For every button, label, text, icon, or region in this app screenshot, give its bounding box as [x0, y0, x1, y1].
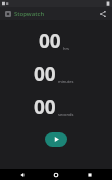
- button[interactable]: Back: [10, 169, 34, 180]
- staticText: 00: [34, 61, 56, 87]
- staticText: 00: [39, 28, 61, 54]
- button[interactable]: App icon: [4, 10, 11, 17]
- button[interactable]: Recent apps: [78, 169, 102, 180]
- staticText: hrs: [63, 46, 70, 51]
- button[interactable]: 00: [0, 94, 112, 120]
- staticText: 00: [34, 94, 56, 120]
- staticText: seconds: [58, 112, 74, 117]
- button[interactable]: 00: [0, 61, 112, 87]
- staticText: Stopwatch: [14, 10, 45, 18]
- button[interactable]: Share: [97, 8, 108, 19]
- button[interactable]: Home: [44, 169, 68, 180]
- button[interactable]: Start: [45, 132, 67, 147]
- button[interactable]: 00: [0, 28, 112, 54]
- staticText: minutes: [58, 79, 74, 84]
